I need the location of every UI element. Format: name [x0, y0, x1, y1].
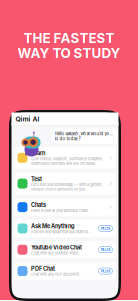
staticText: Let's test your knowledge — with a gener…	[31, 182, 102, 187]
button[interactable]: Youtube Video Chat	[14, 241, 115, 258]
staticText: to do today ?	[54, 136, 80, 141]
staticText: Hello aakash, what would you like	[54, 131, 115, 136]
staticText: PDF Chat	[31, 265, 55, 272]
staticText: Ask Me Anything	[31, 223, 75, 230]
button[interactable]: Chats	[14, 198, 115, 216]
staticText: Test	[31, 176, 42, 182]
staticText: ›	[109, 203, 112, 211]
staticText: Youtube Video Chat	[31, 244, 82, 251]
staticText: multiple choice questions for you.	[31, 187, 86, 191]
button[interactable]: Ask Me Anything	[14, 220, 115, 237]
staticText: WAY TO STUDY	[17, 45, 120, 61]
button[interactable]: Learn	[14, 147, 115, 169]
staticText: PLUS	[101, 226, 110, 231]
staticText: Have a look at your previous chats.	[31, 208, 89, 213]
staticText: Chats	[31, 201, 46, 208]
staticText: Chat with any youtube video.	[31, 251, 79, 255]
staticText: THE FASTEST	[23, 30, 114, 46]
staticText: Qimi AI	[15, 115, 39, 123]
staticText: understand concepts and ask me about.	[31, 161, 96, 166]
staticText: ›	[109, 154, 112, 162]
staticText: Learn	[31, 150, 45, 157]
staticText: Give classic subjects, summarize chapter…	[31, 157, 102, 161]
staticText: PLUS	[101, 269, 110, 273]
button[interactable]: PDF Chat	[14, 262, 115, 280]
staticText: PLUS	[101, 247, 110, 252]
button[interactable]: Test	[14, 173, 115, 194]
staticText: Chat with any PDF document.	[31, 272, 80, 277]
staticText: Ask me any doubt that you want to solve.	[31, 230, 91, 234]
staticText: ›	[109, 180, 112, 188]
